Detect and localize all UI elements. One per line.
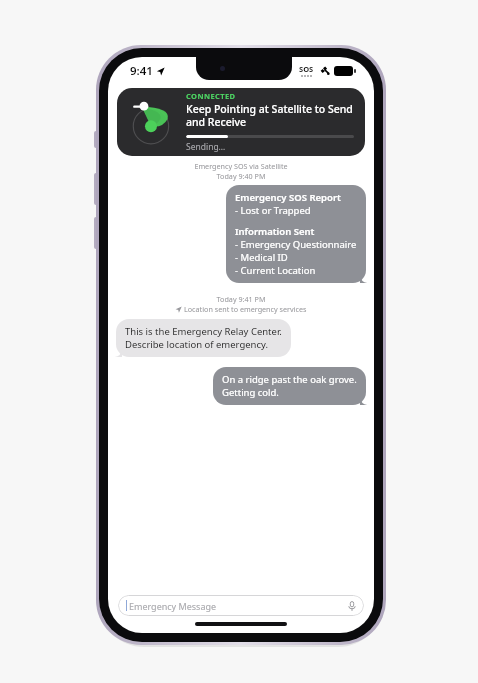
staticText: Getting cold. bbox=[222, 386, 279, 399]
staticText: - Lost or Trapped bbox=[235, 204, 311, 217]
staticText: Emergency SOS via Satellite bbox=[108, 161, 374, 171]
staticText: CONNECTED bbox=[186, 91, 236, 101]
staticText: Today 9:41 PM bbox=[108, 294, 374, 304]
staticText: Emergency SOS Report bbox=[235, 191, 341, 204]
staticText: Today 9:40 PM bbox=[108, 171, 374, 181]
staticText: Location sent to emergency services bbox=[184, 304, 307, 314]
staticText: - Medical ID bbox=[235, 251, 288, 264]
staticText: Sending… bbox=[186, 141, 226, 153]
button[interactable]: On a ridge past the oak grove. bbox=[213, 367, 366, 405]
staticText: Emergency Message bbox=[129, 600, 347, 612]
button[interactable]: Emergency Message bbox=[118, 595, 364, 616]
button[interactable]: This is the Emergency Relay Center. bbox=[116, 319, 291, 357]
staticText: Keep Pointing at Satellite to Send and R… bbox=[186, 102, 354, 129]
staticText: Information Sent bbox=[235, 225, 315, 238]
staticText: 9:41 bbox=[130, 63, 153, 79]
staticText: This is the Emergency Relay Center. bbox=[125, 325, 282, 338]
staticText: - Emergency Questionnaire bbox=[235, 238, 357, 251]
staticText: SOS bbox=[299, 64, 314, 74]
staticText: - Current Location bbox=[235, 264, 316, 277]
other: Dictate bbox=[347, 601, 357, 611]
staticText: On a ridge past the oak grove. bbox=[222, 373, 357, 386]
staticText: Describe location of emergency. bbox=[125, 338, 269, 351]
other: Satellite pointing indicator bbox=[126, 96, 178, 148]
button[interactable]: Satellite pointing indicator bbox=[117, 88, 365, 156]
button[interactable]: Emergency SOS Report bbox=[226, 185, 366, 283]
